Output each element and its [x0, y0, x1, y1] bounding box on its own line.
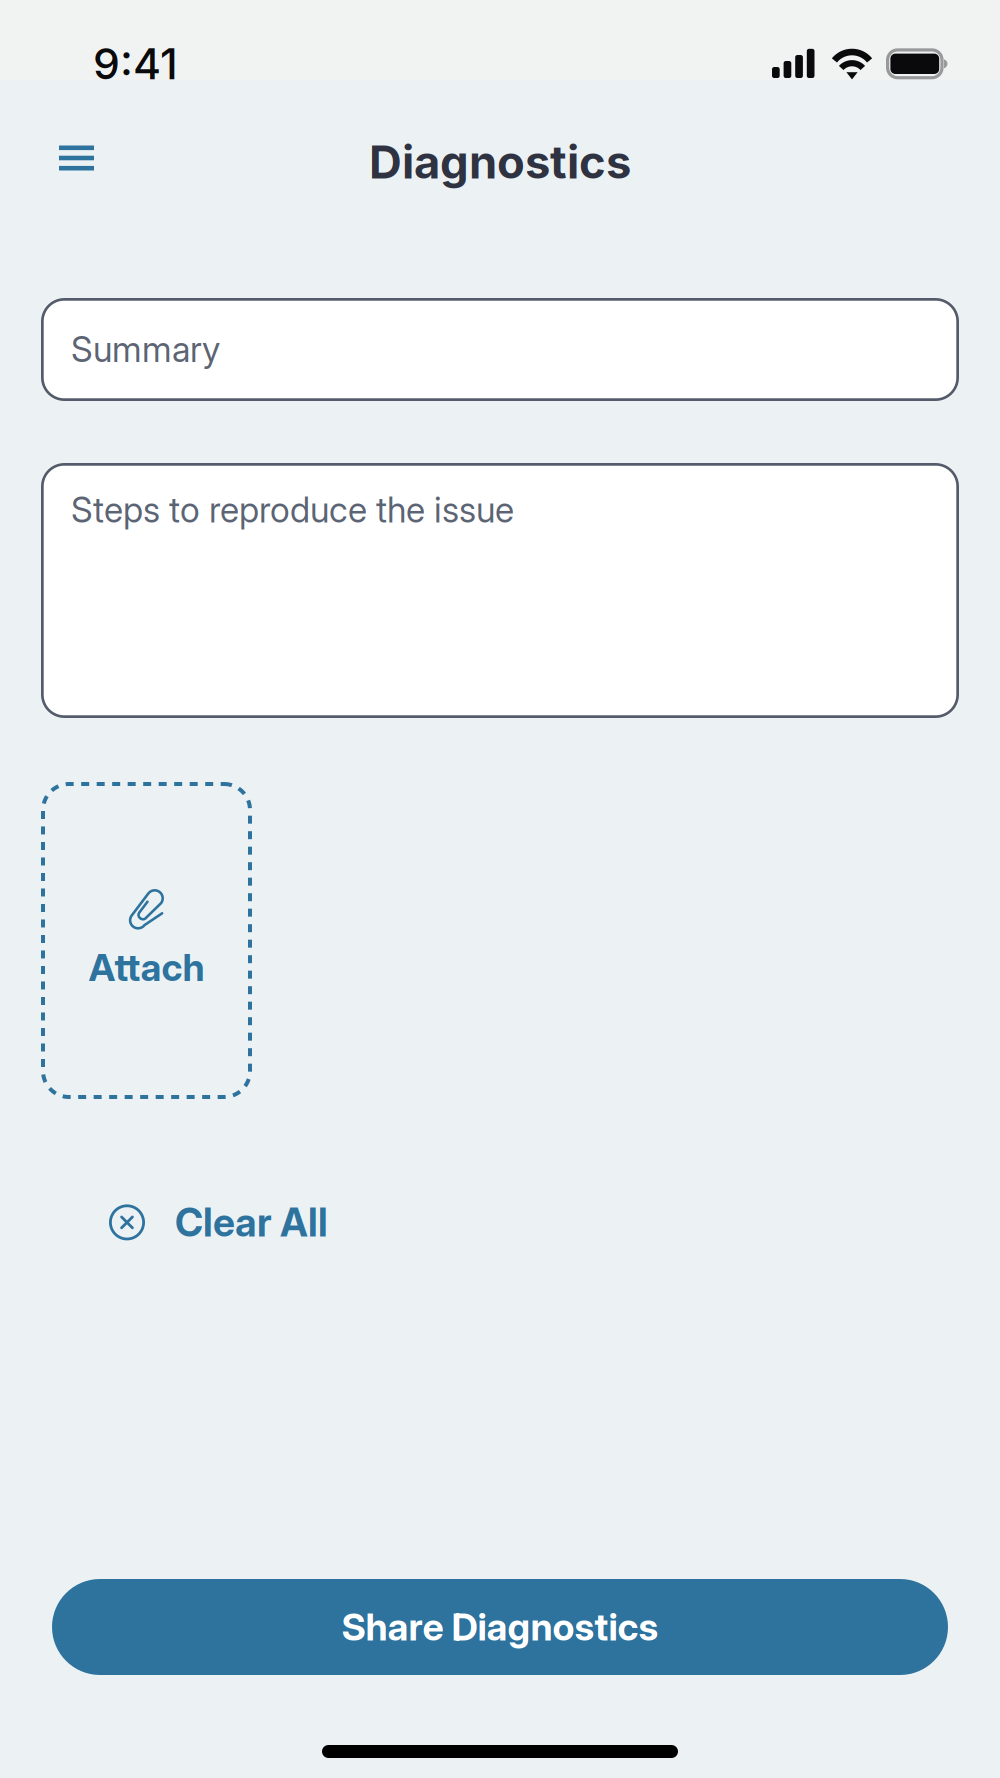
staticText: Steps to reproduce the issue [71, 489, 514, 531]
staticText: Diagnostics [369, 135, 631, 189]
staticText: Share Diagnostics [341, 1604, 658, 1650]
staticText: Clear All [175, 1199, 328, 1246]
button[interactable]: Clear All [109, 1199, 328, 1246]
button[interactable]: Share Diagnostics [52, 1579, 948, 1675]
staticText: 9:41 [93, 38, 178, 90]
button[interactable]: Attach [41, 782, 252, 1099]
staticText: Summary [71, 328, 220, 370]
button[interactable]: Menu [0, 121, 124, 202]
staticText: Attach [88, 945, 204, 990]
